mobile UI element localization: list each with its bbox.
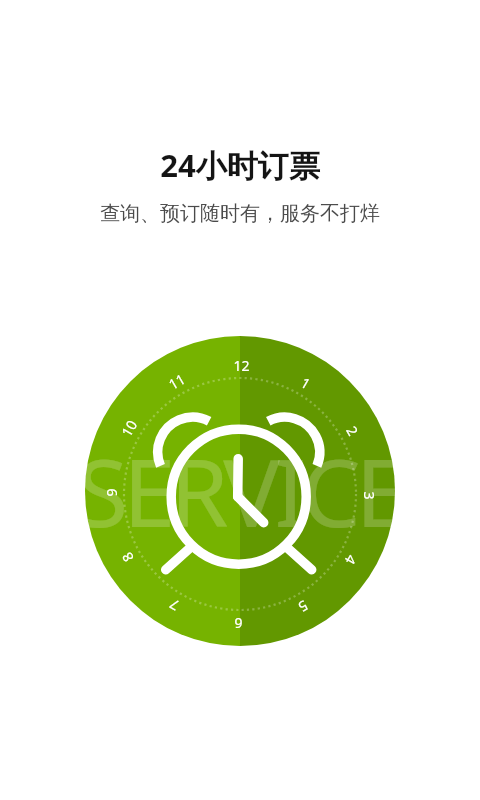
staticText: 查询、预订随时有，服务不打烊 bbox=[100, 201, 380, 226]
button[interactable]: 24 hour ticket booking service bbox=[85, 336, 395, 646]
staticText: 24小时订票 bbox=[160, 144, 320, 186]
